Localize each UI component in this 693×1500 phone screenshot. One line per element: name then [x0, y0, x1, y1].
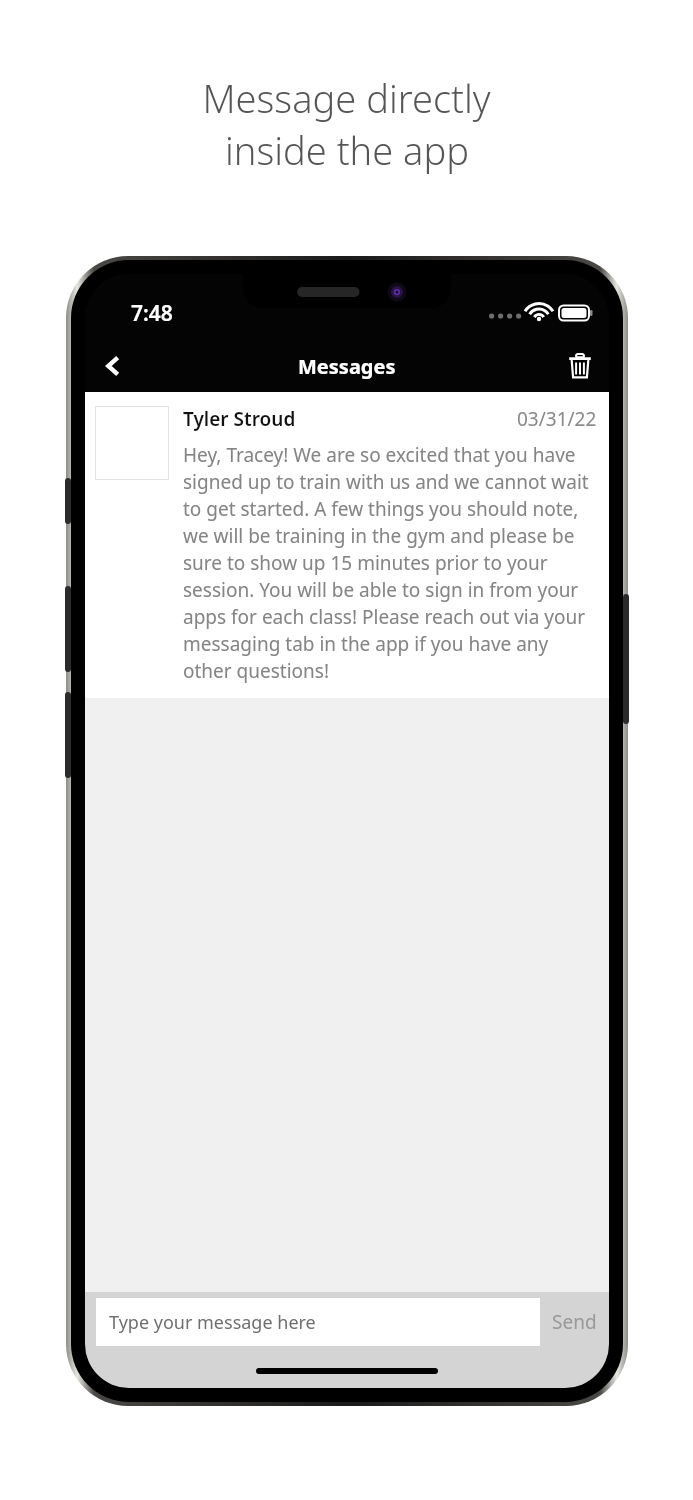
staticText: Message directly — [202, 72, 491, 124]
button[interactable]: Send — [540, 1298, 609, 1346]
button[interactable]: Type your message here — [96, 1298, 540, 1346]
staticText: Messages — [298, 353, 396, 380]
staticText: inside the app — [225, 124, 469, 176]
button[interactable]: Delete — [551, 340, 609, 392]
staticText: Type your message here — [109, 1310, 316, 1335]
staticText: Send — [552, 1309, 597, 1335]
staticText: Tyler Stroud — [183, 406, 517, 432]
button[interactable]: Back — [85, 340, 141, 392]
staticText: Hey, Tracey! We are so excited that you … — [183, 442, 597, 684]
button[interactable]: Tyler Stroud — [85, 392, 609, 698]
staticText: 03/31/22 — [517, 406, 597, 432]
staticText: 7:48 — [131, 299, 173, 328]
